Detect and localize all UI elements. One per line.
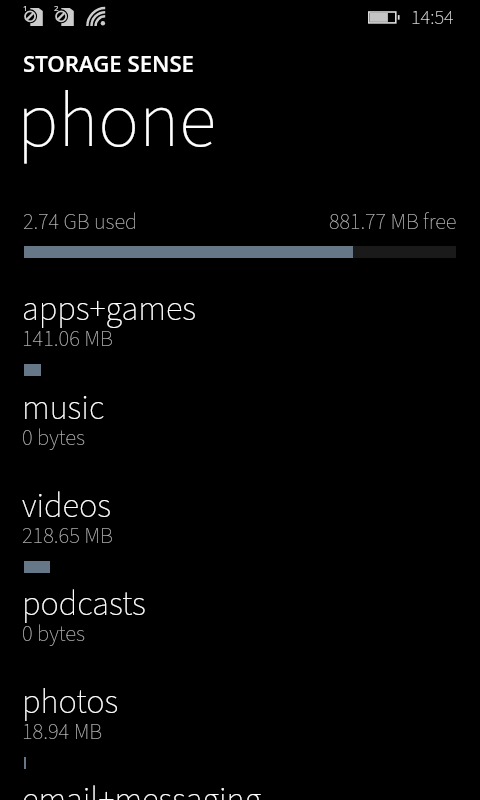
staticText: 0 bytes	[22, 422, 86, 454]
staticText: 14:54	[411, 3, 454, 32]
button[interactable]: email+messaging	[0, 776, 480, 800]
staticText: 18.94 MB	[22, 716, 103, 748]
staticText: 1	[23, 3, 28, 14]
other: Status indicators	[0, 0, 480, 36]
staticText: music	[22, 384, 105, 433]
staticText: photos	[22, 678, 119, 727]
staticText: videos	[22, 482, 111, 531]
button[interactable]: music	[0, 384, 480, 482]
staticText: 218.65 MB	[22, 520, 113, 552]
button[interactable]: photos	[0, 678, 480, 776]
staticText: 2.74 GB used	[23, 206, 138, 238]
button[interactable]: videos	[0, 482, 480, 580]
staticText: apps+games	[22, 285, 197, 334]
staticText: 2	[54, 3, 59, 14]
button[interactable]: podcasts	[0, 580, 480, 678]
staticText: email+messaging	[22, 776, 262, 800]
staticText: 0 bytes	[22, 618, 86, 650]
staticText: 881.77 MB free	[329, 206, 457, 238]
staticText: podcasts	[22, 580, 146, 629]
staticText: phone	[17, 68, 216, 177]
staticText: STORAGE SENSE	[23, 48, 194, 78]
button[interactable]: apps+games	[0, 285, 480, 383]
staticText: 141.06 MB	[22, 323, 113, 355]
